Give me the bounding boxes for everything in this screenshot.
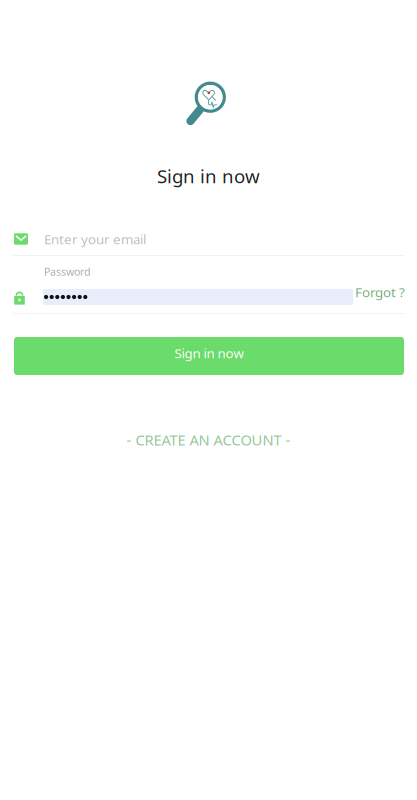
button[interactable]: Sign in now: [14, 337, 404, 375]
staticText: - CREATE AN ACCOUNT -: [126, 430, 290, 449]
staticText: Sign in now: [157, 164, 260, 188]
button[interactable]: - CREATE AN ACCOUNT -: [116, 425, 300, 453]
button[interactable]: Forgot ?: [347, 283, 417, 311]
staticText: Forgot ?: [355, 283, 405, 301]
staticText: Enter your email: [44, 230, 146, 248]
staticText: Password: [44, 264, 91, 279]
staticText: Sign in now: [174, 344, 243, 362]
